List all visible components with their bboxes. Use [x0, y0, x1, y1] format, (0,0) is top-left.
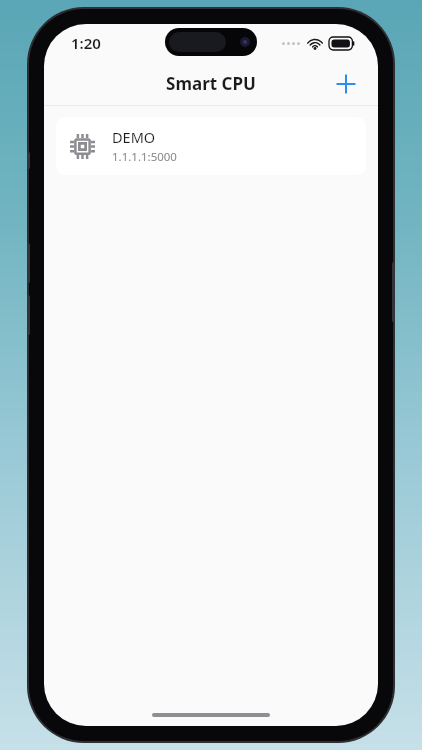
staticText: 1:20	[71, 33, 101, 53]
staticText: DEMO	[112, 127, 156, 147]
staticText: Smart CPU	[166, 72, 256, 95]
button[interactable]: Add device	[326, 64, 366, 104]
button[interactable]: DEMO	[56, 117, 366, 175]
staticText: 1.1.1.1:5000	[112, 149, 177, 165]
